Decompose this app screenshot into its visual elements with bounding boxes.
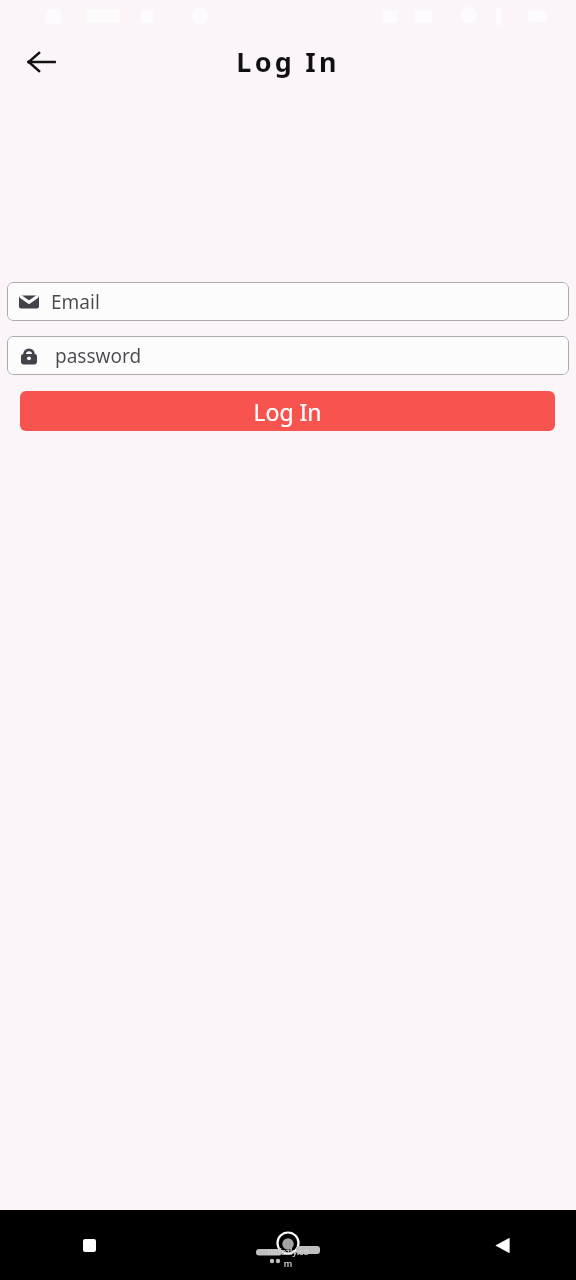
staticText: password <box>55 343 142 369</box>
button[interactable]: Log In <box>20 391 555 431</box>
button[interactable]: Back <box>480 1223 524 1267</box>
staticText: Log In <box>253 396 322 427</box>
button[interactable]: Home <box>263 1220 313 1270</box>
button[interactable]: Recent apps <box>67 1223 111 1267</box>
staticText: nafezly.com <box>263 1245 313 1269</box>
button[interactable]: Password input <box>7 336 569 375</box>
button[interactable]: Back <box>14 34 70 90</box>
button[interactable]: Email input <box>7 282 569 321</box>
staticText: Email <box>51 289 100 315</box>
staticText: Log In <box>236 43 340 80</box>
